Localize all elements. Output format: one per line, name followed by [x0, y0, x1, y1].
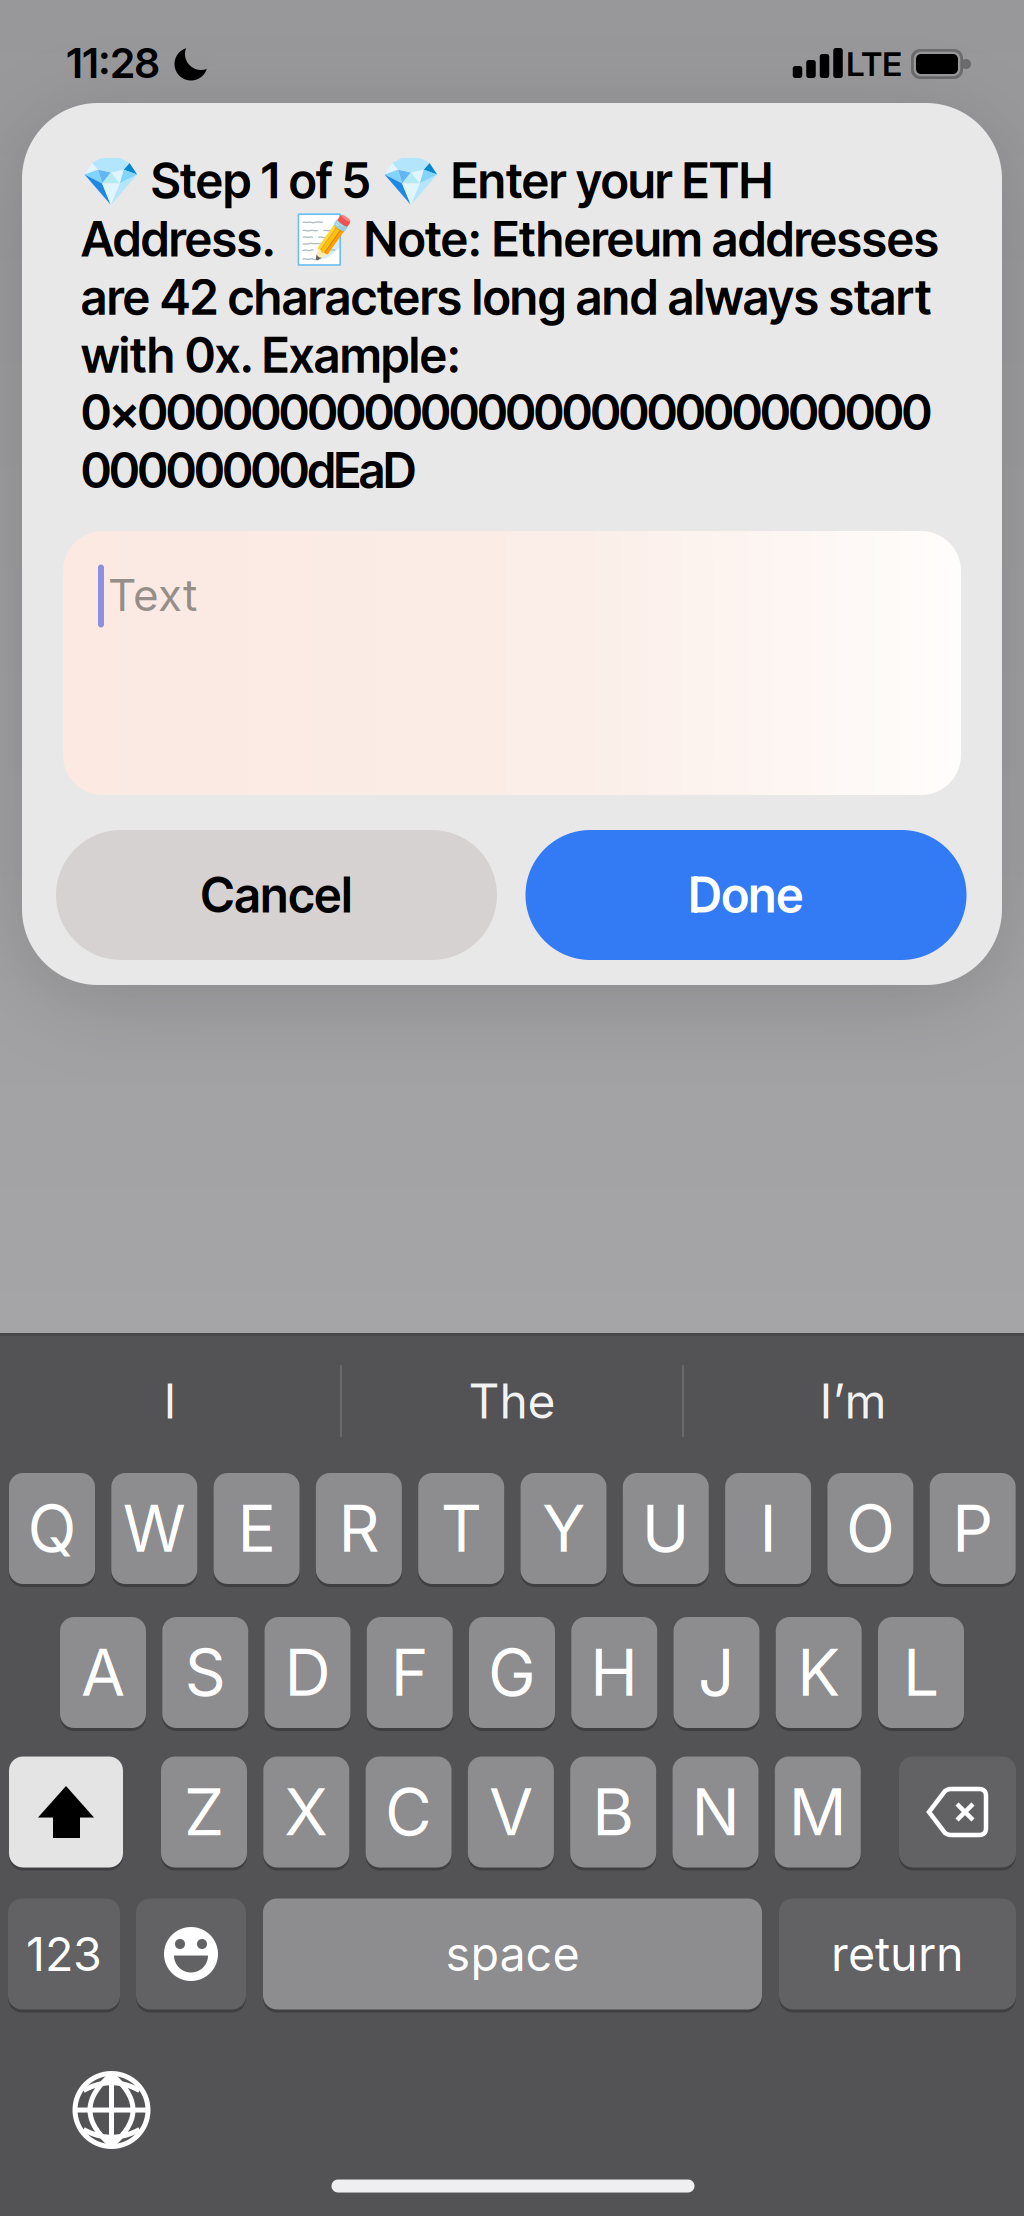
button[interactable]: N	[672, 1755, 758, 1869]
button[interactable]: R	[316, 1471, 402, 1585]
staticText: E	[238, 1490, 276, 1567]
staticText: 0x0000000000000000000000000000	[81, 383, 932, 442]
staticText: W	[123, 1490, 186, 1567]
button[interactable]: O	[827, 1471, 913, 1585]
staticText: H	[590, 1634, 638, 1711]
button[interactable]: J	[673, 1615, 759, 1729]
button[interactable]: X	[263, 1755, 349, 1869]
staticText: Y	[542, 1490, 585, 1567]
staticText: space	[445, 1926, 579, 1982]
staticText: Text	[108, 568, 197, 622]
staticText: Q	[27, 1490, 76, 1567]
button[interactable]: Emoji	[136, 1897, 246, 2011]
staticText: Z	[184, 1773, 224, 1851]
button[interactable]: K	[776, 1615, 862, 1729]
staticText: O	[846, 1490, 895, 1567]
staticText: 11:28	[66, 38, 159, 88]
button[interactable]: T	[418, 1471, 504, 1585]
staticText: M	[789, 1773, 847, 1851]
staticText: X	[284, 1773, 328, 1851]
button[interactable]: Delete	[899, 1755, 1016, 1869]
button[interactable]: Shift	[9, 1755, 123, 1869]
staticText: N	[691, 1773, 739, 1851]
button[interactable]: G	[469, 1615, 555, 1729]
button[interactable]: return	[779, 1897, 1016, 2011]
button[interactable]: W	[111, 1471, 197, 1585]
staticText: I’m	[819, 1372, 886, 1430]
button[interactable]: Cancel	[56, 830, 497, 960]
staticText: R	[338, 1490, 379, 1567]
button[interactable]: L	[878, 1615, 964, 1729]
button[interactable]: 123	[8, 1897, 120, 2011]
button[interactable]: Q	[9, 1471, 95, 1585]
staticText: Done	[688, 866, 803, 924]
button[interactable]: I	[725, 1471, 811, 1585]
button[interactable]: D	[264, 1615, 350, 1729]
staticText: G	[488, 1634, 536, 1711]
staticText: LTE	[846, 44, 902, 84]
button[interactable]: B	[570, 1755, 656, 1869]
staticText: P	[952, 1490, 993, 1567]
staticText: The	[468, 1372, 555, 1430]
button[interactable]: U	[623, 1471, 709, 1585]
button[interactable]: The	[347, 1351, 677, 1451]
staticText: U	[642, 1490, 690, 1567]
staticText: I	[163, 1372, 176, 1430]
staticText: D	[284, 1634, 330, 1711]
staticText: 123	[26, 1926, 102, 1982]
button[interactable]: Text input	[63, 531, 961, 795]
staticText: F	[391, 1634, 429, 1711]
staticText: T	[441, 1490, 482, 1567]
staticText: A	[81, 1634, 125, 1711]
button[interactable]: M	[775, 1755, 861, 1869]
staticText: S	[185, 1634, 226, 1711]
button[interactable]: Done	[525, 830, 966, 960]
staticText: return	[831, 1926, 964, 1982]
button[interactable]: Z	[161, 1755, 247, 1869]
staticText: B	[592, 1773, 634, 1851]
button[interactable]: V	[468, 1755, 554, 1869]
button[interactable]: E	[214, 1471, 300, 1585]
button[interactable]: A	[60, 1615, 146, 1729]
button[interactable]: I	[5, 1351, 335, 1451]
button[interactable]: Next keyboard	[73, 2072, 149, 2148]
button[interactable]: I’m	[688, 1351, 1018, 1451]
button[interactable]: H	[571, 1615, 657, 1729]
button[interactable]: P	[930, 1471, 1016, 1585]
staticText: C	[385, 1773, 432, 1851]
button[interactable]: Y	[520, 1471, 606, 1585]
staticText: J	[698, 1634, 735, 1711]
button[interactable]: S	[162, 1615, 248, 1729]
button[interactable]: space	[263, 1897, 762, 2011]
button[interactable]: C	[366, 1755, 452, 1869]
staticText: 💎 Step 1 of 5 💎 Enter your ETH Address. …	[81, 152, 939, 384]
staticText: V	[489, 1773, 533, 1851]
staticText: K	[797, 1634, 840, 1711]
button[interactable]: F	[367, 1615, 453, 1729]
staticText: 00000000dEaD	[81, 441, 416, 500]
staticText: L	[903, 1634, 939, 1711]
staticText: Cancel	[200, 866, 352, 924]
staticText: I	[760, 1490, 777, 1567]
